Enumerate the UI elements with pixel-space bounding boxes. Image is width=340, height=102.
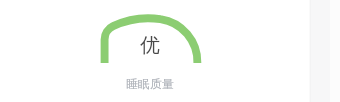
staticText: 睡眠质量 — [126, 76, 174, 91]
staticText: 优 — [140, 33, 160, 58]
